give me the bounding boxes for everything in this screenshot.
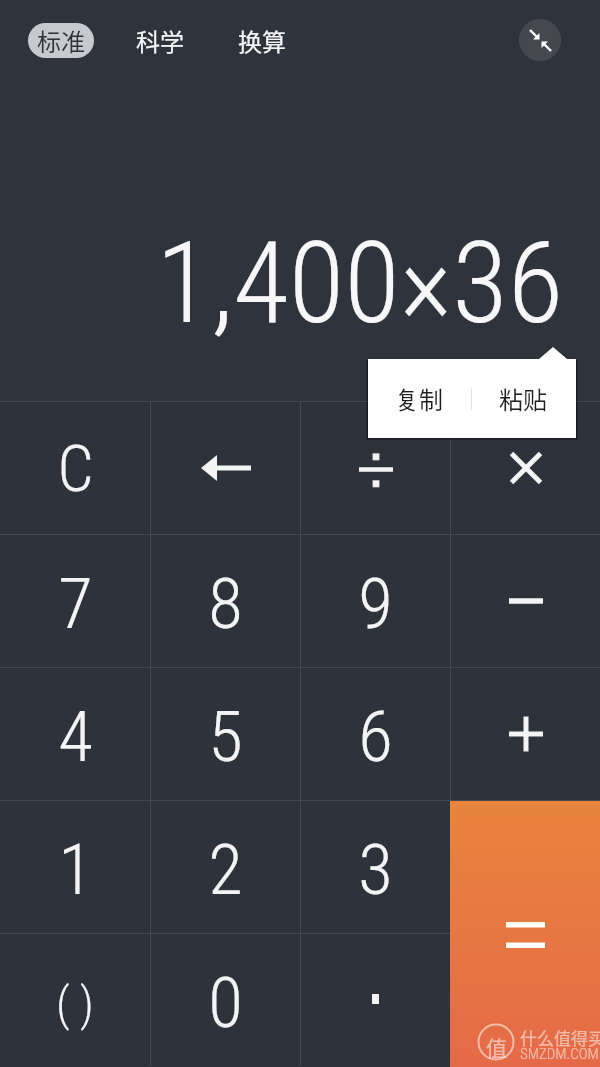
- staticText: SMZDM.COM: [520, 1045, 599, 1063]
- staticText: 8: [208, 562, 243, 645]
- button[interactable]: [0, 534, 150, 667]
- button[interactable]: [300, 800, 450, 933]
- staticText: 7: [58, 562, 93, 645]
- staticText: 5: [208, 695, 243, 778]
- button[interactable]: Equals: [450, 801, 600, 1067]
- staticText: 1,400×36: [156, 216, 564, 350]
- button[interactable]: [0, 401, 150, 534]
- button[interactable]: 标准: [28, 23, 94, 58]
- staticText: 0: [208, 961, 243, 1044]
- button[interactable]: [450, 667, 600, 800]
- button[interactable]: [150, 933, 300, 1066]
- staticText: 1: [58, 828, 93, 911]
- button[interactable]: [300, 933, 450, 1066]
- button[interactable]: [450, 534, 600, 667]
- staticText: 值: [486, 1032, 507, 1062]
- button[interactable]: [450, 401, 600, 534]
- button[interactable]: [150, 800, 300, 933]
- button[interactable]: [0, 800, 150, 933]
- staticText: 粘贴: [499, 381, 547, 416]
- button[interactable]: [150, 667, 300, 800]
- button[interactable]: 粘贴: [471, 361, 574, 436]
- button[interactable]: [150, 534, 300, 667]
- staticText: 换算: [238, 23, 286, 58]
- button[interactable]: 科学: [133, 15, 187, 66]
- button[interactable]: [300, 534, 450, 667]
- staticText: 复制: [395, 381, 443, 416]
- staticText: 标准: [37, 23, 85, 58]
- staticText: 3: [358, 828, 393, 911]
- button[interactable]: [150, 401, 300, 534]
- staticText: 9: [358, 562, 393, 645]
- staticText: C: [57, 432, 94, 507]
- other: Multiply: [496, 438, 556, 498]
- other: Minus: [496, 571, 556, 631]
- other: Plus: [496, 704, 556, 764]
- staticText: 科学: [136, 23, 184, 58]
- other: Divide: [346, 438, 406, 498]
- staticText: 6: [358, 695, 393, 778]
- other: Backspace: [191, 433, 261, 503]
- staticText: ( ): [56, 977, 94, 1031]
- staticText: 4: [58, 695, 93, 778]
- button[interactable]: 复制: [368, 361, 470, 436]
- button[interactable]: [0, 667, 150, 800]
- button[interactable]: Collapse: [519, 19, 561, 61]
- staticText: 什么值得买: [520, 1025, 600, 1050]
- button[interactable]: 换算: [235, 15, 289, 66]
- button[interactable]: [300, 667, 450, 800]
- staticText: 2: [208, 828, 243, 911]
- button[interactable]: [300, 401, 450, 534]
- button[interactable]: [0, 933, 150, 1066]
